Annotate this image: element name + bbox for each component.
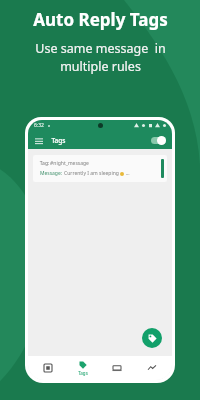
button[interactable]: Tags xyxy=(68,356,98,380)
staticText: Tag: xyxy=(39,160,50,167)
button[interactable]: Toggle tags xyxy=(151,136,166,145)
button[interactable]: Tag: xyxy=(33,155,167,182)
staticText: Message: xyxy=(39,170,63,177)
button[interactable]: Menu xyxy=(33,135,44,146)
button[interactable]: Devices xyxy=(102,356,132,380)
staticText: Use same message in xyxy=(35,40,166,57)
staticText: Tags xyxy=(51,136,66,145)
button[interactable]: Statistics xyxy=(137,356,167,380)
staticText: #night_message xyxy=(50,160,89,167)
staticText: 6:32 xyxy=(34,122,44,129)
staticText: Currently I am sleeping xyxy=(63,170,120,177)
button[interactable]: Messages xyxy=(33,356,63,380)
staticText: Auto Reply Tags xyxy=(33,8,168,31)
staticText: multiple rules xyxy=(60,58,141,75)
staticText: Tags xyxy=(78,370,88,376)
staticText: ... xyxy=(124,170,130,177)
button[interactable]: Add tag xyxy=(142,328,162,348)
